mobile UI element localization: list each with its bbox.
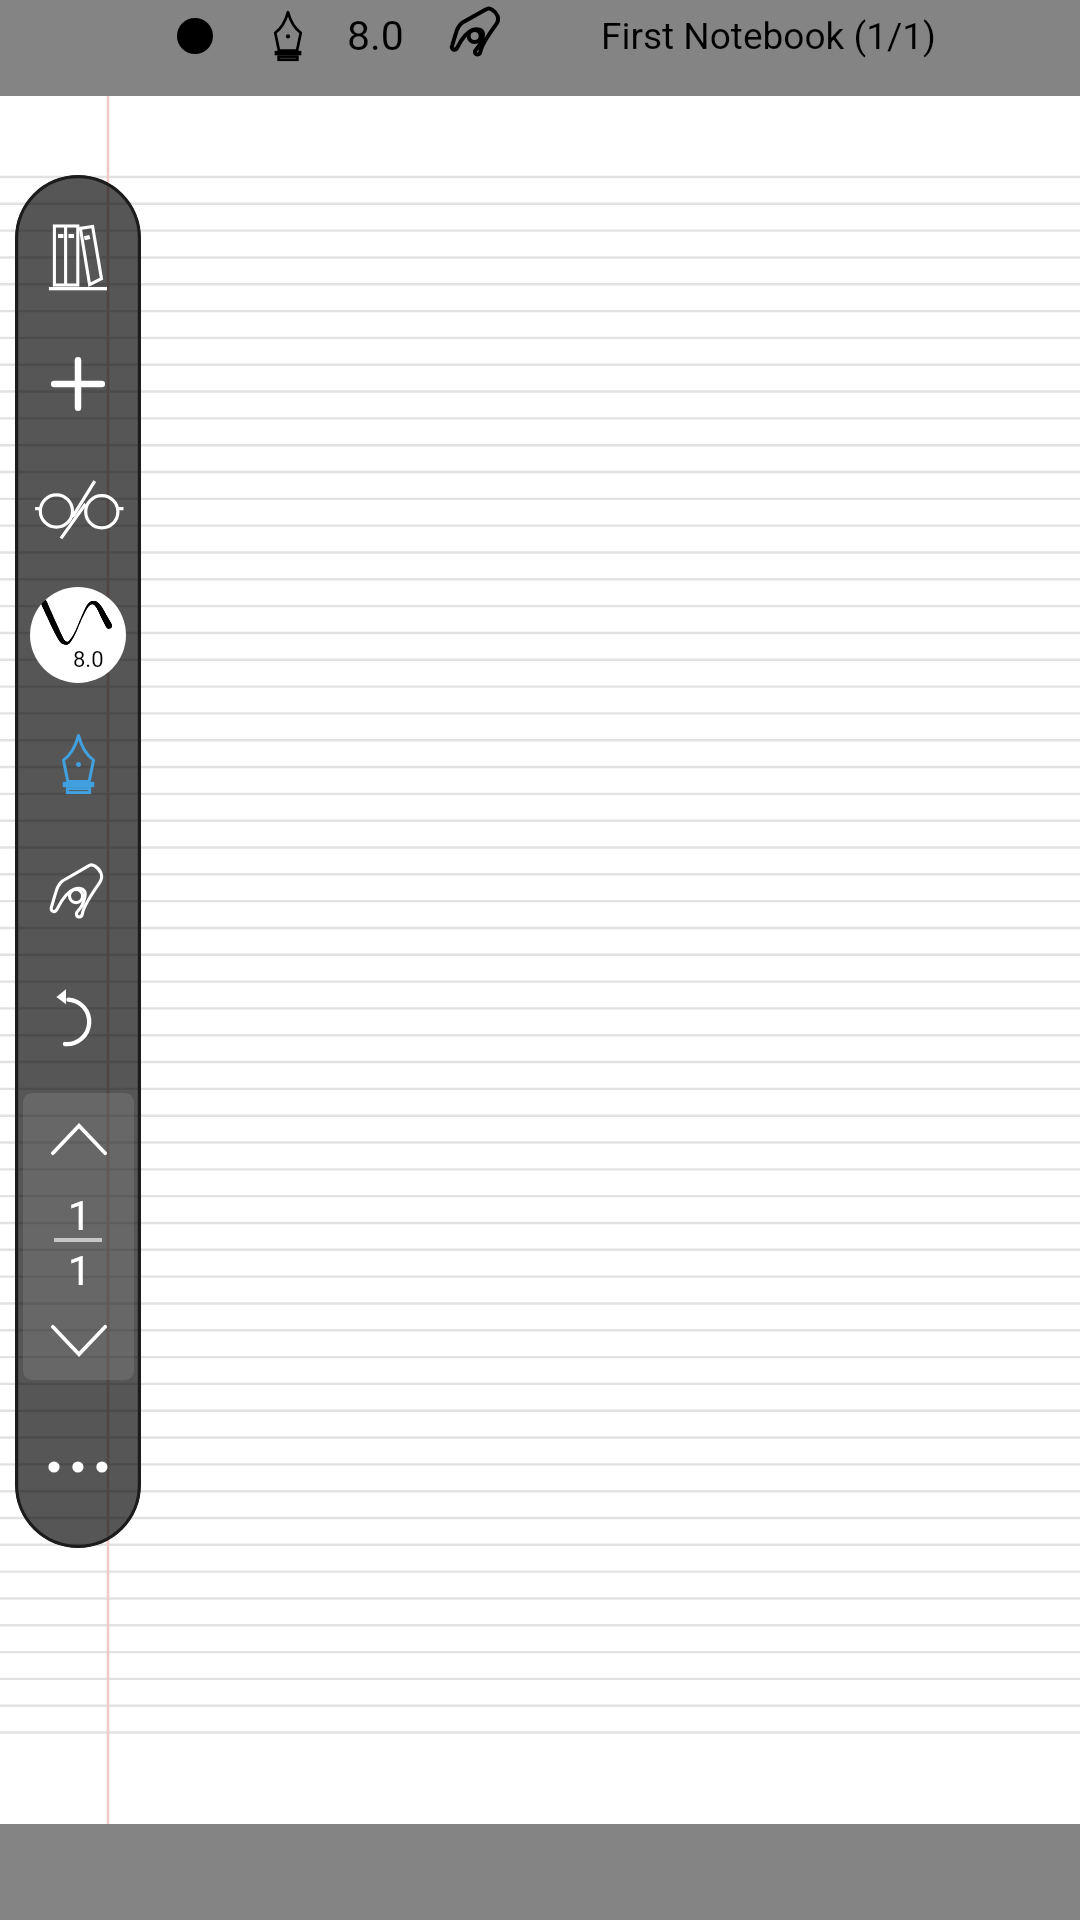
button[interactable]: Selection tool <box>439 0 511 68</box>
button[interactable]: First Notebook (1/1) <box>601 0 936 72</box>
button[interactable]: Previous page <box>27 1093 130 1189</box>
button[interactable]: Add page <box>41 347 115 421</box>
staticText: 8.0 <box>73 647 104 673</box>
button[interactable]: Pan tool <box>37 853 117 929</box>
button[interactable]: More options <box>39 1427 117 1507</box>
button[interactable]: Stroke width <box>30 587 126 683</box>
button[interactable]: Notebooks <box>41 221 115 295</box>
button[interactable]: Pen tool <box>41 727 115 801</box>
button[interactable]: Next page <box>27 1290 130 1380</box>
button[interactable]: Pen <box>252 0 324 72</box>
staticText: 8.0 <box>347 12 404 60</box>
button[interactable]: Cut <box>31 472 125 546</box>
staticText: 1 <box>68 1247 92 1295</box>
staticText: 1 <box>68 1192 92 1240</box>
staticText: First Notebook (1/1) <box>601 15 936 58</box>
button[interactable]: Undo <box>40 980 116 1056</box>
button[interactable]: Current colour <box>159 0 231 72</box>
